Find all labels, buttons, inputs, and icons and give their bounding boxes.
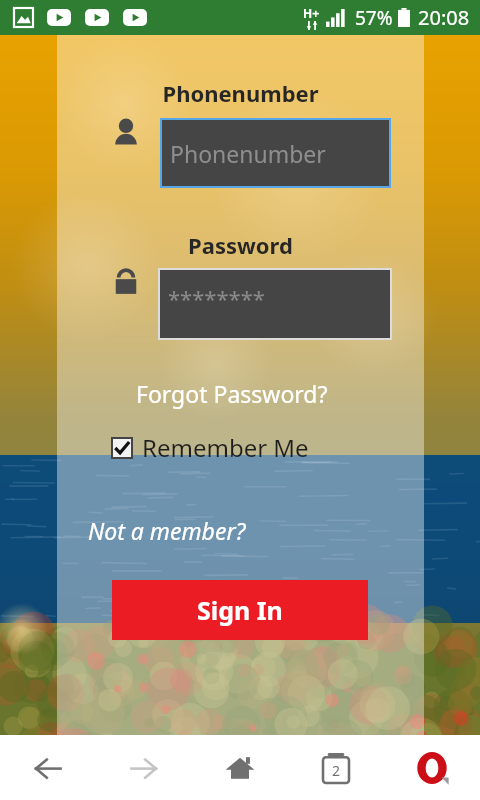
button[interactable]: Back [0,735,96,800]
button[interactable]: Forgot Password? [136,378,328,409]
staticText: Password [57,230,424,260]
staticText: ******** [168,283,265,313]
button[interactable]: Remember Me [111,431,309,464]
button[interactable]: Opera menu [384,735,480,800]
button[interactable]: ******** [158,268,392,340]
button[interactable]: Forward [96,735,192,800]
staticText: 57% [355,5,393,31]
staticText: 20:08 [418,4,470,31]
staticText: Remember Me [142,431,309,464]
button[interactable]: Not a member? [88,515,246,546]
staticText: Phonenumber [57,78,424,108]
staticText: H+ [303,5,320,21]
button[interactable]: Home [192,735,288,800]
button[interactable]: Tabs [288,735,384,800]
other: Phone number [108,115,144,151]
button[interactable]: Sign In [112,580,368,640]
staticText: 2 [332,761,341,780]
other: Password [110,267,142,299]
staticText: Not a member? [88,515,246,546]
staticText: Sign In [197,593,283,627]
button[interactable]: Phonenumber [160,118,391,188]
staticText: Forgot Password? [136,378,328,409]
staticText: Phonenumber [170,138,326,169]
